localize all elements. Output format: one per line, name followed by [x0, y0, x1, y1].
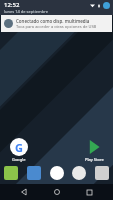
button[interactable]: Mail	[27, 166, 41, 180]
button[interactable]: G	[6, 138, 32, 162]
button[interactable]: Home	[49, 184, 65, 200]
button[interactable]: Chrome	[72, 166, 86, 180]
staticText: 12:52	[4, 1, 20, 9]
button[interactable]: Play Store	[81, 138, 107, 162]
button[interactable]: All apps	[50, 166, 64, 180]
staticText: Google	[12, 157, 26, 162]
button[interactable]: Recents	[81, 184, 97, 200]
button[interactable]: Conectado como disp. multimedia	[1, 15, 112, 32]
staticText: Play Store	[85, 157, 104, 162]
button[interactable]: Messages	[4, 166, 18, 180]
button[interactable]: Camera	[95, 166, 109, 180]
button[interactable]: Back	[16, 184, 32, 200]
staticText: G	[15, 140, 23, 155]
staticText: lunes 14 de septiembre	[4, 9, 48, 14]
staticText: Conectado como disp. multimedia	[16, 18, 90, 24]
staticText: Toca para acceder a otras opciones de US…	[16, 24, 97, 29]
